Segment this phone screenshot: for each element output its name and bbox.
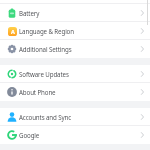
staticText: Accounts and Sync bbox=[19, 113, 141, 121]
staticText: About Phone bbox=[19, 88, 141, 96]
button[interactable]: A bbox=[0, 22, 150, 40]
button[interactable]: Software Updates bbox=[0, 65, 150, 83]
staticText: Battery bbox=[19, 9, 141, 17]
button[interactable]: About Phone bbox=[0, 83, 150, 101]
staticText: Software Updates bbox=[19, 70, 141, 78]
staticText: Google bbox=[19, 131, 141, 139]
button[interactable]: Additional Settings bbox=[0, 40, 150, 58]
staticText: Language & Region bbox=[19, 27, 141, 35]
staticText: A bbox=[11, 28, 15, 35]
button[interactable]: Battery bbox=[0, 4, 150, 22]
button[interactable]: Accounts and Sync bbox=[0, 108, 150, 126]
button[interactable]: Google bbox=[0, 126, 150, 144]
staticText: Additional Settings bbox=[19, 45, 141, 53]
